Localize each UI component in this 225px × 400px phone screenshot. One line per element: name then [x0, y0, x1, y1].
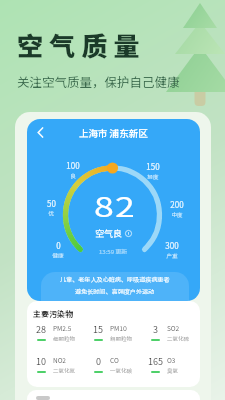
staticText: 优	[48, 210, 54, 218]
staticText: 避免长时间、高强度户外运动	[75, 287, 155, 296]
staticText: 10	[36, 355, 46, 368]
button[interactable]: 0	[89, 355, 146, 375]
staticText: 轻度	[147, 173, 159, 181]
button[interactable]: 10	[32, 355, 89, 375]
staticText: NO2	[53, 355, 67, 364]
staticText: 50	[47, 198, 56, 210]
staticText: 0	[96, 355, 101, 368]
staticText: 严重	[166, 252, 178, 260]
staticText: CO	[110, 355, 119, 364]
staticText: PM2.5	[53, 323, 72, 332]
staticText: 关注空气质量，保护自己健康	[17, 72, 180, 90]
staticText: 主要污染物	[33, 308, 73, 320]
staticText: 中度	[171, 211, 183, 219]
staticText: 300	[165, 240, 179, 252]
staticText: 0	[56, 240, 61, 252]
staticText: 空气质量	[17, 26, 146, 64]
staticText: 28	[36, 323, 46, 336]
staticText: 健康	[52, 252, 64, 260]
staticText: 100	[66, 160, 80, 172]
staticText: 一氧化碳	[110, 367, 133, 375]
button[interactable]: 28	[32, 323, 89, 343]
button[interactable]: 15	[89, 323, 146, 343]
staticText: PM10	[110, 323, 127, 332]
staticText: 165	[148, 355, 163, 368]
button[interactable]: 上海市 浦东新区	[79, 126, 148, 140]
staticText: 二氧化氮	[53, 367, 76, 375]
staticText: 15	[93, 323, 103, 336]
staticText: 细颗粒物	[53, 335, 76, 343]
button[interactable]: 165	[146, 355, 200, 375]
staticText: 13:59 更新	[99, 247, 128, 256]
staticText: 上海市 浦东新区	[79, 126, 148, 140]
staticText: 粗颗粒物	[110, 335, 133, 343]
button[interactable]: 3	[146, 323, 200, 343]
staticText: 200	[170, 199, 184, 211]
staticText: 臭氧	[167, 367, 179, 375]
button[interactable]: 返回	[31, 123, 50, 142]
button[interactable]: 儿童、老年人及心脏病、呼吸道疾病患者	[41, 272, 189, 301]
staticText: 儿童、老年人及心脏病、呼吸道疾病患者	[60, 275, 170, 284]
staticText: 空气良	[95, 227, 123, 240]
staticText: SO2	[167, 323, 180, 332]
staticText: 二氧化硫	[167, 335, 190, 343]
staticText: 3	[153, 323, 158, 336]
staticText: 150	[146, 161, 160, 173]
staticText: 良	[70, 172, 76, 180]
staticText: O3	[167, 355, 176, 364]
staticText: 82	[94, 186, 136, 225]
